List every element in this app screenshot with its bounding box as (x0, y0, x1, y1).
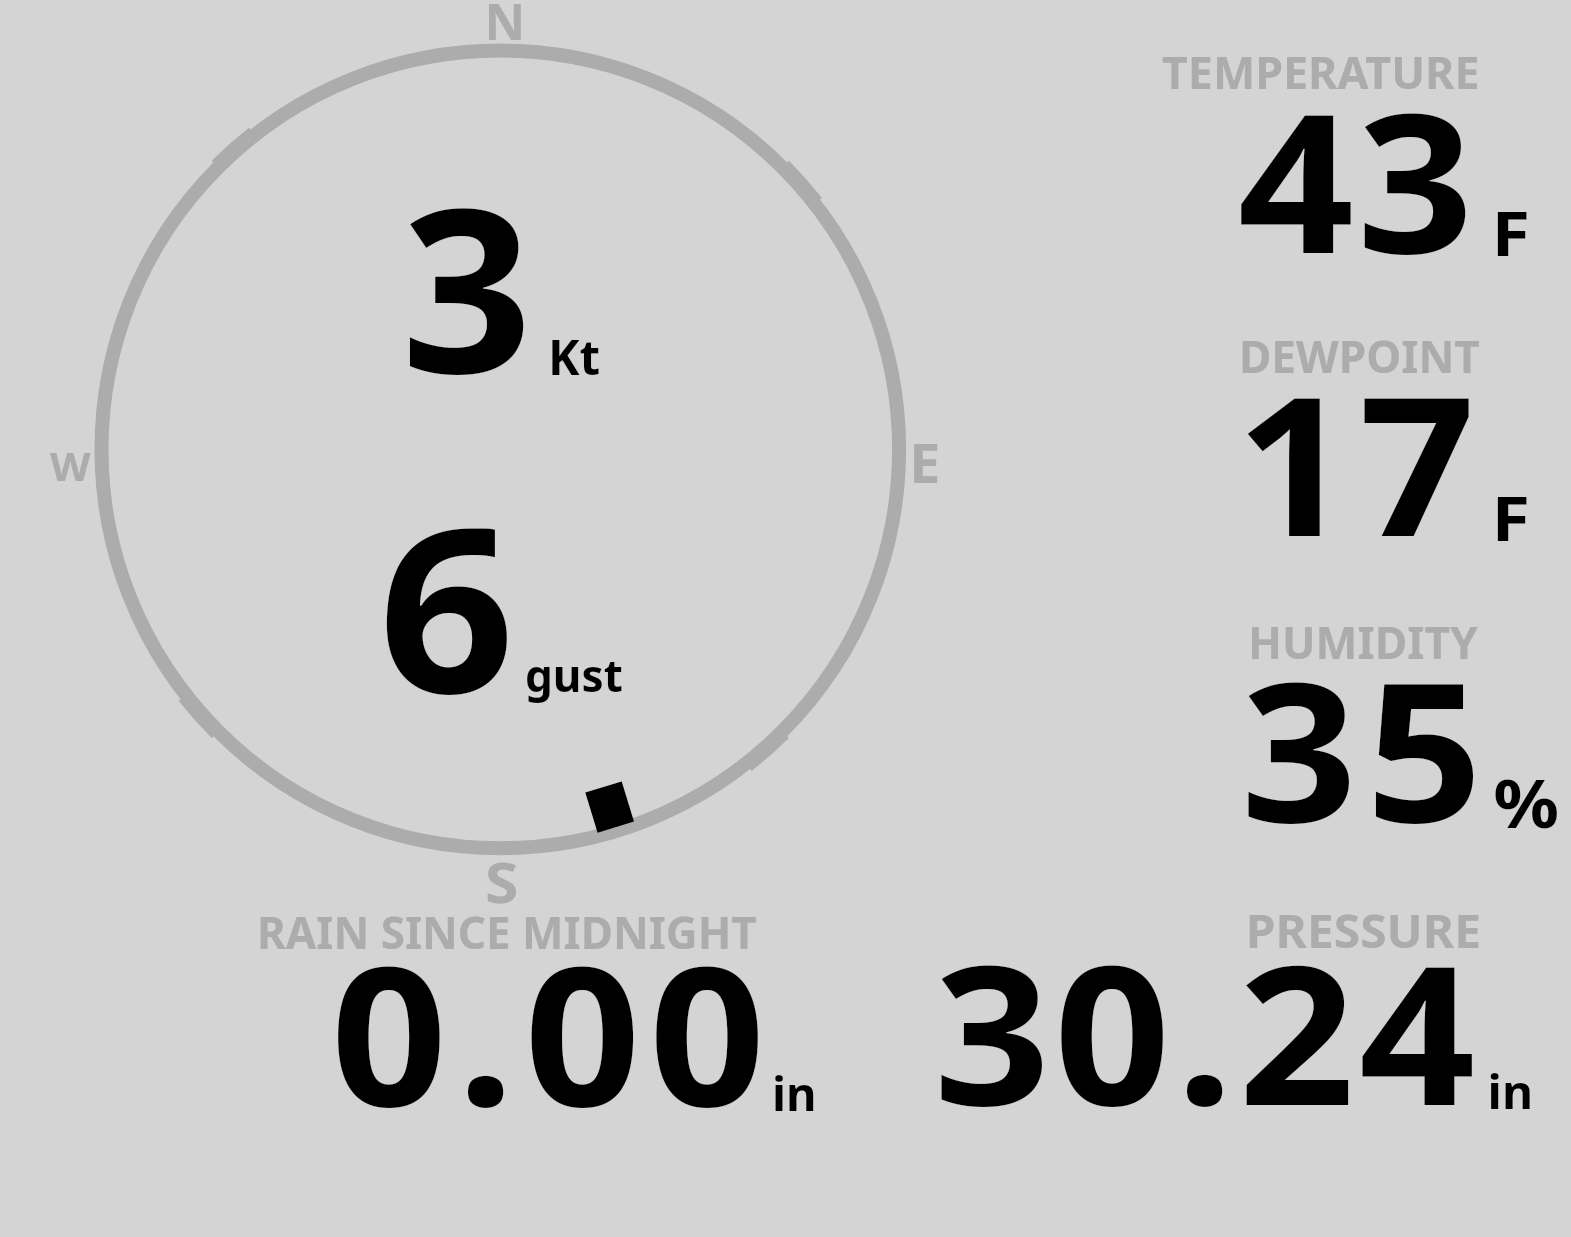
button[interactable] (1150, 610, 1570, 850)
button[interactable]: Wind direction compass: 3 knots, gusting… (94, 43, 906, 855)
button[interactable] (1150, 40, 1560, 280)
button[interactable] (1150, 325, 1560, 565)
button[interactable] (900, 898, 1545, 1126)
button[interactable] (240, 898, 830, 1126)
